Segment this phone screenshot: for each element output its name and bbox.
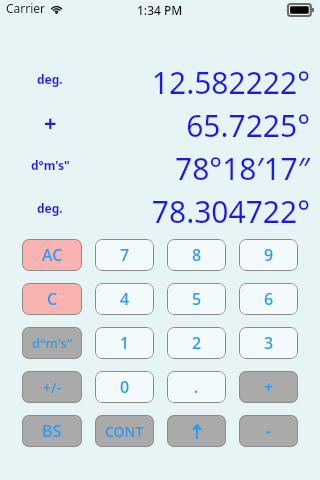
button[interactable]: + — [239, 371, 298, 403]
staticText: 65.7225° — [186, 105, 310, 138]
button[interactable]: 1 — [95, 327, 154, 359]
button[interactable]: 0 — [95, 371, 154, 403]
staticText: 78°18′17″ — [175, 148, 310, 181]
button[interactable]: 5 — [167, 283, 226, 315]
staticText: CONT — [105, 422, 144, 441]
staticText: 0 — [120, 376, 130, 398]
staticText: AC — [42, 244, 63, 266]
button[interactable]: d°m's" — [22, 327, 82, 359]
staticText: 12.582222° — [151, 62, 310, 95]
staticText: C — [47, 288, 58, 310]
button[interactable]: 7 — [95, 239, 154, 271]
staticText: - — [266, 420, 272, 442]
button[interactable]: CONT — [95, 415, 154, 447]
staticText: 5 — [192, 288, 202, 310]
staticText: deg. — [37, 71, 63, 87]
button[interactable]: BS — [22, 415, 82, 447]
staticText: 1:34 PM — [137, 2, 183, 18]
staticText: BS — [42, 420, 62, 442]
staticText: 2 — [192, 332, 202, 354]
staticText: + — [44, 107, 57, 137]
button[interactable]: C — [22, 283, 82, 315]
staticText: + — [264, 376, 274, 398]
staticText: 4 — [120, 288, 130, 310]
button[interactable]: +/- — [22, 371, 82, 403]
button[interactable]: 6 — [239, 283, 298, 315]
button[interactable]: AC — [22, 239, 82, 271]
button[interactable]: - — [239, 415, 298, 447]
button[interactable]: 8 — [167, 239, 226, 271]
button[interactable]: 9 — [239, 239, 298, 271]
button[interactable]: 2 — [167, 327, 226, 359]
button[interactable]: Swap — [167, 415, 226, 447]
staticText: 78.304722° — [151, 191, 310, 224]
staticText: d°m's" — [31, 157, 70, 173]
staticText: 8 — [192, 244, 202, 266]
staticText: d°m's" — [32, 334, 73, 352]
staticText: 7 — [120, 244, 130, 266]
button[interactable]: . — [167, 371, 226, 403]
staticText: . — [194, 376, 199, 398]
staticText: deg. — [37, 200, 63, 216]
staticText: 3 — [264, 332, 274, 354]
staticText: 6 — [264, 288, 274, 310]
staticText: +/- — [43, 378, 61, 397]
staticText: Carrier — [6, 0, 46, 16]
button[interactable]: 4 — [95, 283, 154, 315]
staticText: 9 — [264, 244, 274, 266]
button[interactable]: 3 — [239, 327, 298, 359]
staticText: 1 — [120, 332, 130, 354]
